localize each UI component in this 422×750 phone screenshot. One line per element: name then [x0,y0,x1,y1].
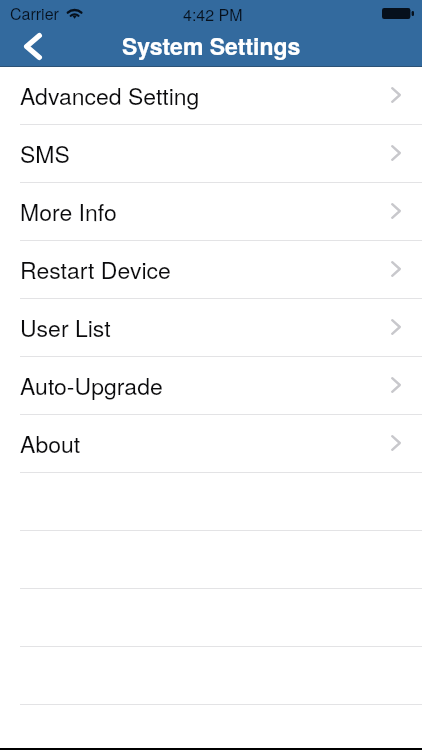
staticText: About [20,427,81,460]
button[interactable]: Auto-Upgrade [0,357,422,415]
staticText: Advanced Setting [20,79,200,112]
staticText: Auto-Upgrade [20,369,163,402]
staticText: Carrier [10,2,59,25]
staticText: More Info [20,195,117,228]
button[interactable]: User List [0,299,422,357]
staticText: SMS [20,137,70,170]
button[interactable]: More Info [0,183,422,241]
button[interactable]: Back [9,25,57,67]
button[interactable]: About [0,415,422,473]
staticText: Restart Device [20,253,171,286]
staticText: 4:42 PM [183,3,243,26]
staticText: System Settings [122,29,301,62]
button[interactable]: Advanced Setting [0,67,422,125]
staticText: User List [20,311,111,344]
button[interactable]: SMS [0,125,422,183]
button[interactable]: Restart Device [0,241,422,299]
